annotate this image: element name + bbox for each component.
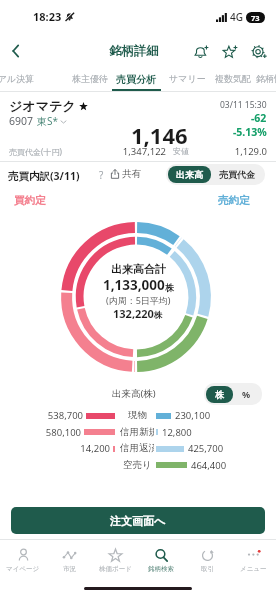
staticText: 18:23	[33, 9, 62, 24]
button[interactable]: メニュー	[230, 543, 276, 577]
staticText: 464,400	[191, 459, 227, 472]
staticText: 株	[154, 310, 163, 321]
staticText: 株	[215, 389, 224, 400]
staticText: 銘柄検索	[148, 565, 174, 573]
staticText: サマリー	[169, 73, 206, 84]
button[interactable]: Price alert	[186, 37, 215, 66]
staticText: 03/11 15:30	[220, 99, 267, 111]
staticText: -5.13%	[233, 125, 267, 139]
staticText: 1,129.0	[0, 145, 267, 158]
staticText: 売買分析	[116, 73, 156, 86]
staticText: -62	[251, 111, 267, 125]
staticText: 現物	[128, 409, 147, 421]
staticText: 73	[251, 13, 260, 23]
staticText: 1,347,122	[0, 145, 166, 158]
staticText: 安値	[173, 146, 189, 156]
staticText: マイページ	[6, 565, 40, 573]
staticText: 230,100	[175, 409, 211, 422]
button[interactable]: Help	[94, 168, 108, 182]
button[interactable]: 取引	[184, 543, 230, 577]
staticText: 株	[165, 282, 174, 293]
staticText: 注文画面へ	[110, 514, 166, 528]
button[interactable]: 株主優待	[67, 70, 113, 87]
staticText: ジオマテク	[9, 98, 76, 114]
button[interactable]: サマリー	[164, 70, 211, 87]
staticText: 1,146	[131, 120, 188, 150]
staticText: 売買代金	[219, 169, 255, 180]
button[interactable]: 市況	[46, 543, 92, 577]
staticText: 銘柄情報	[256, 73, 276, 84]
staticText: ?	[99, 168, 104, 182]
button[interactable]: 銘柄情報	[251, 70, 276, 87]
staticText: 売買内訳(3/11)	[8, 169, 80, 183]
staticText: 東S*	[37, 114, 58, 128]
staticText: メニュー	[240, 565, 267, 573]
button[interactable]: 株価ボード	[92, 543, 138, 577]
button[interactable]: Back	[2, 37, 30, 65]
button[interactable]: 売買分析	[111, 70, 161, 89]
staticText: 425,700	[188, 442, 224, 455]
staticText: 出来高合計	[111, 262, 166, 276]
staticText: 132,220	[113, 306, 154, 321]
staticText: 共有	[122, 168, 141, 180]
staticText: 市況	[63, 565, 76, 573]
button[interactable]: Settings	[244, 37, 273, 66]
staticText: 580,100	[0, 426, 81, 439]
staticText: 4G	[230, 10, 243, 24]
staticText: ビジュアル決算	[0, 73, 35, 84]
staticText: 信用新規	[120, 426, 154, 438]
button[interactable]: 注文画面へ	[11, 507, 265, 534]
button[interactable]: Share	[110, 168, 141, 180]
staticText: 6907	[9, 114, 34, 128]
staticText: 信用返済	[120, 442, 154, 454]
staticText: 空売り	[123, 459, 152, 471]
button[interactable]: 売買代金	[211, 166, 263, 183]
staticText: 売買代金(十円)	[9, 146, 62, 157]
staticText: 12,800	[162, 426, 192, 439]
staticText: 出来高(株)	[112, 387, 156, 400]
staticText: %	[242, 388, 251, 400]
staticText: (内周：5日平均)	[106, 294, 171, 306]
staticText: 買約定	[14, 194, 46, 207]
button[interactable]: Add to favorites	[215, 37, 244, 66]
button[interactable]: 株	[206, 386, 233, 403]
staticText: 株価ボード	[99, 565, 132, 573]
staticText: 14,200	[0, 442, 110, 455]
button[interactable]: 複数気配	[210, 70, 256, 87]
button[interactable]: ビジュアル決算	[0, 70, 40, 87]
staticText: 1,133,000	[103, 276, 165, 294]
button[interactable]: マイページ	[0, 543, 46, 577]
button[interactable]: 銘柄検索	[138, 543, 184, 577]
staticText: 銘柄詳細	[109, 43, 159, 59]
staticText: 出来高	[176, 169, 203, 180]
button[interactable]: 出来高	[168, 166, 211, 183]
staticText: 売約定	[218, 194, 250, 207]
staticText: 538,700	[0, 409, 83, 422]
button[interactable]: %	[233, 385, 260, 403]
staticText: 複数気配	[215, 73, 251, 84]
staticText: 取引	[201, 565, 214, 573]
staticText: 株主優待	[72, 73, 108, 84]
